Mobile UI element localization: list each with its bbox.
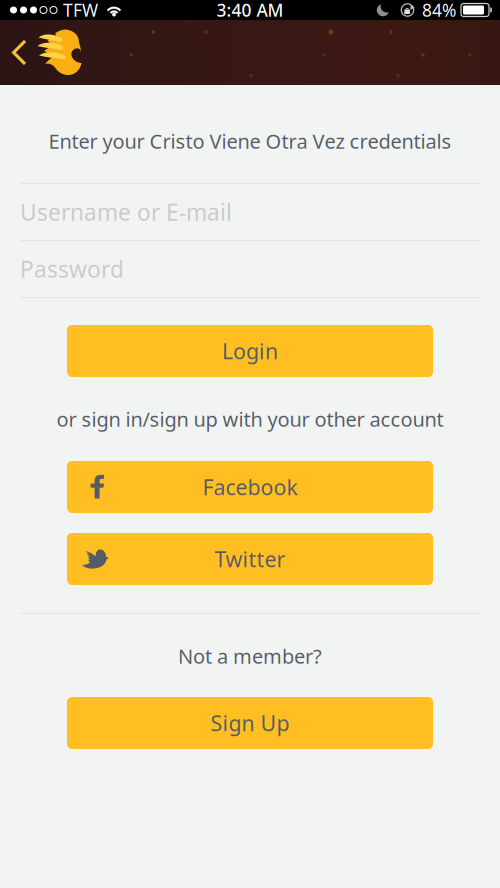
staticText: TFW [63, 0, 98, 21]
button[interactable]: Login [67, 325, 433, 377]
staticText: Not a member? [178, 643, 322, 669]
button[interactable]: Twitter [67, 533, 433, 585]
staticText: Username or E-mail [20, 197, 232, 227]
staticText: Login [222, 337, 278, 365]
staticText: 84% [422, 0, 456, 21]
button[interactable]: Sign Up [67, 697, 433, 749]
staticText: Twitter [214, 545, 285, 573]
staticText: Password [20, 254, 124, 284]
staticText: 3:40 AM [216, 0, 283, 21]
staticText: Enter your Cristo Viene Otra Vez credent… [48, 128, 451, 154]
staticText: Sign Up [210, 709, 289, 737]
button[interactable]: Facebook [67, 461, 433, 513]
staticText: or sign in/sign up with your other accou… [56, 406, 443, 432]
button[interactable]: Back [0, 20, 36, 85]
staticText: Facebook [202, 473, 297, 501]
